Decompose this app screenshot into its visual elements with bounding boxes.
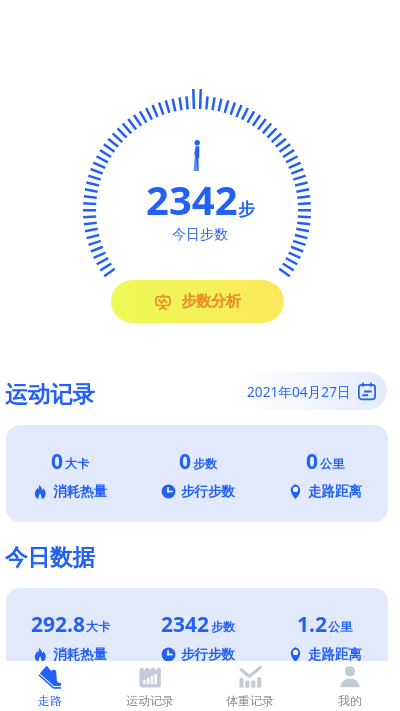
staticText: 步数分析 — [181, 292, 241, 311]
staticText: 运动记录 — [5, 380, 95, 408]
staticText: 走路距离 — [308, 483, 362, 500]
staticText: 0 — [51, 447, 64, 476]
staticText: 1.2 — [297, 610, 327, 639]
staticText: 大卡 — [65, 456, 89, 471]
staticText: 公里 — [328, 619, 352, 634]
staticText: 我的 — [338, 693, 362, 708]
staticText: 今日步数 — [172, 226, 228, 244]
staticText: 2342 — [161, 610, 210, 639]
staticText: 292.8 — [31, 610, 85, 639]
staticText: 0 — [179, 447, 192, 476]
button[interactable]: 2021年04月27日 — [242, 372, 387, 410]
button[interactable]: Step analysis — [111, 280, 284, 323]
staticText: 步 — [238, 199, 255, 220]
button[interactable]: 体重记录 — [200, 661, 300, 711]
staticText: 2342 — [146, 172, 238, 226]
staticText: 公里 — [320, 456, 344, 471]
staticText: 大卡 — [86, 619, 110, 634]
staticText: 体重记录 — [226, 693, 274, 708]
button[interactable]: 走路 — [0, 661, 100, 711]
staticText: 步数 — [211, 619, 235, 634]
staticText: 步数 — [193, 456, 217, 471]
button[interactable]: 运动记录 — [100, 661, 200, 711]
staticText: 今日数据 — [5, 543, 95, 571]
staticText: 2021年04月27日 — [247, 382, 351, 401]
staticText: 步行步数 — [181, 483, 235, 500]
button[interactable]: 我的 — [300, 661, 400, 711]
staticText: 0 — [306, 447, 319, 476]
other: Step analysis — [155, 294, 171, 310]
staticText: 走路 — [38, 693, 62, 708]
staticText: 走路距离 — [308, 646, 362, 663]
staticText: 消耗热量 — [53, 646, 107, 663]
staticText: 消耗热量 — [53, 483, 107, 500]
other: Pick date — [358, 382, 376, 400]
staticText: 运动记录 — [126, 693, 174, 708]
other: Walking — [192, 140, 201, 171]
staticText: 步行步数 — [181, 646, 235, 663]
